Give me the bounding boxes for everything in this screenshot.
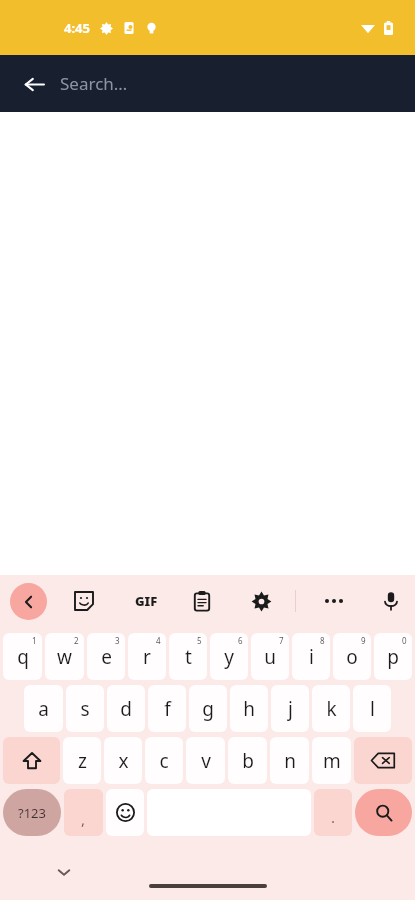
button[interactable]: , bbox=[64, 789, 103, 836]
staticText: j bbox=[288, 696, 293, 722]
button[interactable]: Back bbox=[10, 583, 47, 620]
staticText: ?123 bbox=[18, 804, 46, 822]
button[interactable]: c bbox=[145, 737, 183, 784]
button[interactable]: p bbox=[374, 633, 412, 680]
staticText: s bbox=[80, 696, 90, 722]
staticText: z bbox=[78, 748, 87, 774]
staticText: 7 bbox=[279, 635, 284, 646]
staticText: Search… bbox=[60, 72, 128, 95]
button[interactable]: ?123 bbox=[3, 789, 61, 836]
staticText: y bbox=[224, 644, 234, 670]
button[interactable]: s bbox=[66, 685, 104, 732]
staticText: o bbox=[346, 644, 358, 670]
button[interactable]: Settings bbox=[241, 581, 281, 621]
button[interactable]: Back bbox=[14, 64, 54, 104]
staticText: 1 bbox=[32, 635, 37, 646]
staticText: v bbox=[201, 748, 211, 774]
button[interactable]: j bbox=[271, 685, 309, 732]
staticText: b bbox=[242, 748, 254, 774]
button[interactable]: a bbox=[24, 685, 63, 732]
staticText: i bbox=[309, 644, 314, 670]
staticText: g bbox=[202, 696, 214, 722]
button[interactable]: Clipboard bbox=[182, 581, 222, 621]
button[interactable]: e bbox=[87, 633, 125, 680]
button[interactable]: v bbox=[186, 737, 225, 784]
staticText: p bbox=[387, 644, 399, 670]
button[interactable]: f bbox=[148, 685, 186, 732]
staticText: a bbox=[38, 696, 49, 722]
staticText: 5 bbox=[197, 635, 202, 646]
staticText: c bbox=[159, 748, 169, 774]
staticText: h bbox=[243, 696, 255, 722]
button[interactable]: u bbox=[251, 633, 289, 680]
staticText: t bbox=[185, 644, 192, 670]
staticText: 0 bbox=[402, 635, 407, 646]
button[interactable]: b bbox=[228, 737, 267, 784]
staticText: 4:45 bbox=[64, 19, 90, 37]
staticText: w bbox=[57, 644, 72, 670]
button[interactable]: Shift bbox=[3, 737, 60, 784]
staticText: 6 bbox=[238, 635, 243, 646]
staticText: r bbox=[143, 644, 151, 670]
staticText: 3 bbox=[115, 635, 120, 646]
staticText: n bbox=[284, 748, 296, 774]
staticText: 8 bbox=[320, 635, 325, 646]
button[interactable]: n bbox=[270, 737, 309, 784]
button[interactable]: q bbox=[3, 633, 42, 680]
button[interactable]: i bbox=[292, 633, 330, 680]
button[interactable]: Search bbox=[355, 789, 412, 836]
button[interactable]: Stickers bbox=[64, 581, 104, 621]
staticText: l bbox=[370, 696, 375, 722]
staticText: q bbox=[17, 644, 29, 670]
staticText: 4 bbox=[156, 635, 161, 646]
button[interactable]: z bbox=[63, 737, 101, 784]
staticText: x bbox=[118, 748, 129, 774]
button[interactable]: Voice input bbox=[371, 581, 411, 621]
button[interactable]: GIF bbox=[124, 579, 168, 623]
staticText: k bbox=[326, 696, 337, 722]
button[interactable]: More options bbox=[314, 581, 354, 621]
button[interactable]: g bbox=[189, 685, 227, 732]
button[interactable]: k bbox=[312, 685, 350, 732]
staticText: , bbox=[81, 809, 86, 829]
button[interactable]: Emoji bbox=[106, 789, 144, 836]
staticText: e bbox=[101, 644, 112, 670]
button[interactable]: o bbox=[333, 633, 371, 680]
button[interactable]: y bbox=[210, 633, 248, 680]
staticText: . bbox=[331, 807, 336, 827]
staticText: f bbox=[164, 696, 171, 722]
button[interactable]: . bbox=[314, 789, 352, 836]
button[interactable]: w bbox=[45, 633, 84, 680]
button[interactable]: l bbox=[353, 685, 391, 732]
button[interactable]: Backspace bbox=[354, 737, 412, 784]
staticText: 9 bbox=[361, 635, 366, 646]
button[interactable]: m bbox=[312, 737, 351, 784]
staticText: d bbox=[120, 696, 132, 722]
button[interactable]: d bbox=[107, 685, 145, 732]
staticText: 2 bbox=[74, 635, 79, 646]
button[interactable]: t bbox=[169, 633, 207, 680]
staticText: u bbox=[264, 644, 276, 670]
staticText: GIF bbox=[135, 592, 158, 610]
staticText: m bbox=[323, 748, 341, 774]
button[interactable]: r bbox=[128, 633, 166, 680]
button[interactable]: h bbox=[230, 685, 268, 732]
button[interactable]: Hide keyboard bbox=[46, 854, 82, 890]
button[interactable]: x bbox=[104, 737, 142, 784]
